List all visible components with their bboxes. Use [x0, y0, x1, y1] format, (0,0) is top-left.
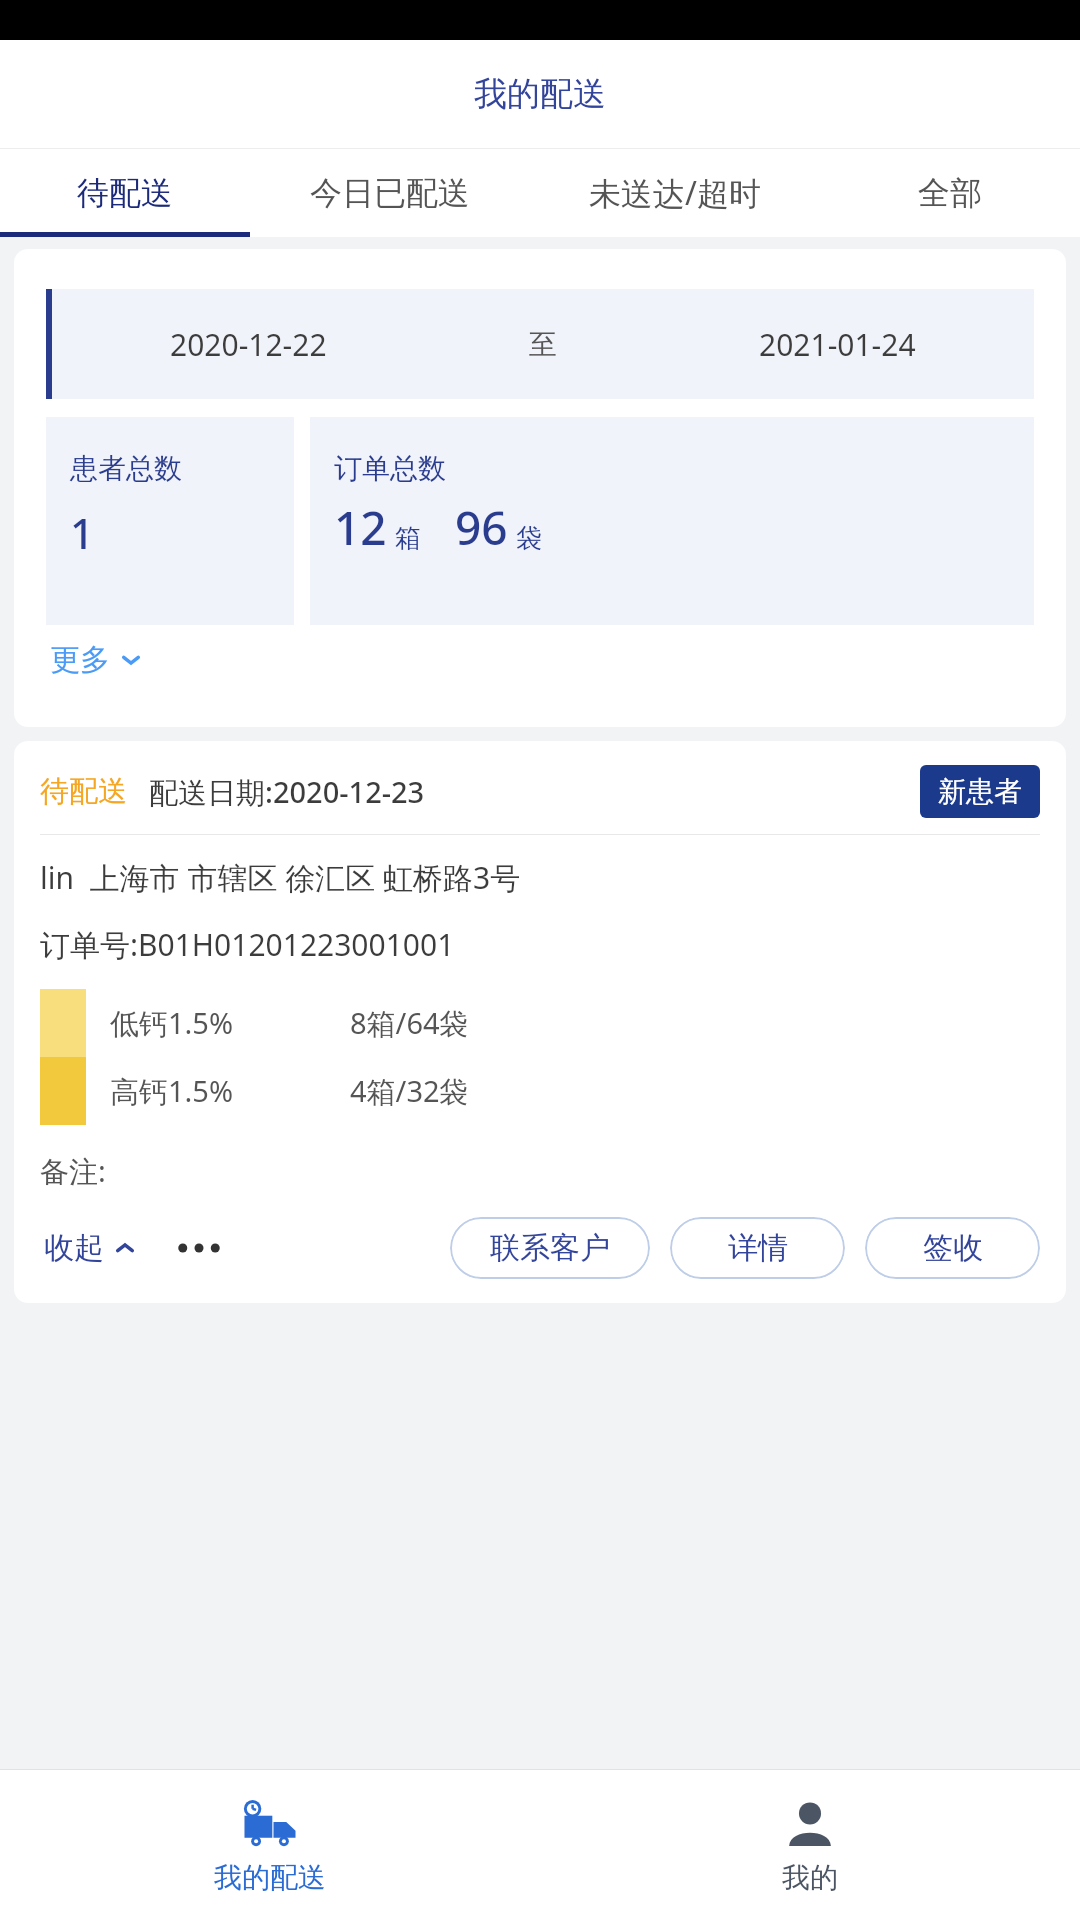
- staticText: 1: [70, 504, 95, 561]
- staticText: 2020-12-22: [170, 324, 327, 365]
- button[interactable]: 签收: [865, 1217, 1040, 1279]
- staticText: 患者总数: [70, 451, 182, 486]
- button[interactable]: 今日已配送: [250, 149, 530, 237]
- staticText: 箱: [395, 522, 421, 555]
- staticText: 低钙1.5%: [110, 1003, 234, 1043]
- button[interactable]: 新患者: [920, 765, 1040, 818]
- staticText: 2021-01-24: [759, 324, 916, 365]
- staticText: 更多: [50, 641, 110, 679]
- staticText: 联系客户: [490, 1229, 610, 1267]
- staticText: 96: [455, 496, 508, 559]
- staticText: 备注:: [40, 1151, 106, 1191]
- staticText: 未送达/超时: [589, 171, 761, 215]
- button[interactable]: 2020-12-22: [46, 289, 1034, 399]
- button[interactable]: 联系客户: [450, 1217, 650, 1279]
- button[interactable]: 详情: [670, 1217, 845, 1279]
- staticText: 至: [529, 327, 557, 362]
- staticText: 今日已配送: [310, 173, 470, 213]
- staticText: 8箱/64袋: [350, 1003, 469, 1043]
- staticText: 收起: [44, 1229, 104, 1267]
- staticText: 我的配送: [214, 1860, 326, 1895]
- staticText: 新患者: [938, 774, 1022, 809]
- staticText: 我的配送: [474, 73, 606, 115]
- staticText: 签收: [923, 1229, 983, 1267]
- button[interactable]: 待配送: [0, 149, 250, 237]
- staticText: 订单号:B01H01201223001001: [40, 924, 455, 965]
- staticText: 4箱/32袋: [350, 1071, 469, 1111]
- staticText: 我的: [782, 1860, 838, 1895]
- staticText: 待配送: [77, 173, 173, 213]
- button[interactable]: More options: [170, 1224, 228, 1272]
- staticText: lin 上海市 市辖区 徐汇区 虹桥路3号: [40, 857, 521, 898]
- staticText: 袋: [516, 522, 542, 555]
- staticText: 高钙1.5%: [110, 1071, 234, 1111]
- staticText: 详情: [728, 1229, 788, 1267]
- button[interactable]: 我的配送: [0, 1770, 540, 1920]
- button[interactable]: 收起: [40, 1221, 142, 1275]
- staticText: 待配送: [40, 773, 127, 810]
- staticText: 12: [334, 496, 387, 559]
- button[interactable]: 全部: [820, 149, 1080, 237]
- staticText: 全部: [918, 173, 982, 213]
- button[interactable]: 我的: [540, 1770, 1080, 1920]
- button[interactable]: 未送达/超时: [530, 149, 820, 237]
- staticText: 订单总数: [334, 451, 446, 486]
- button[interactable]: 更多: [46, 635, 148, 685]
- staticText: 配送日期:2020-12-23: [149, 772, 425, 812]
